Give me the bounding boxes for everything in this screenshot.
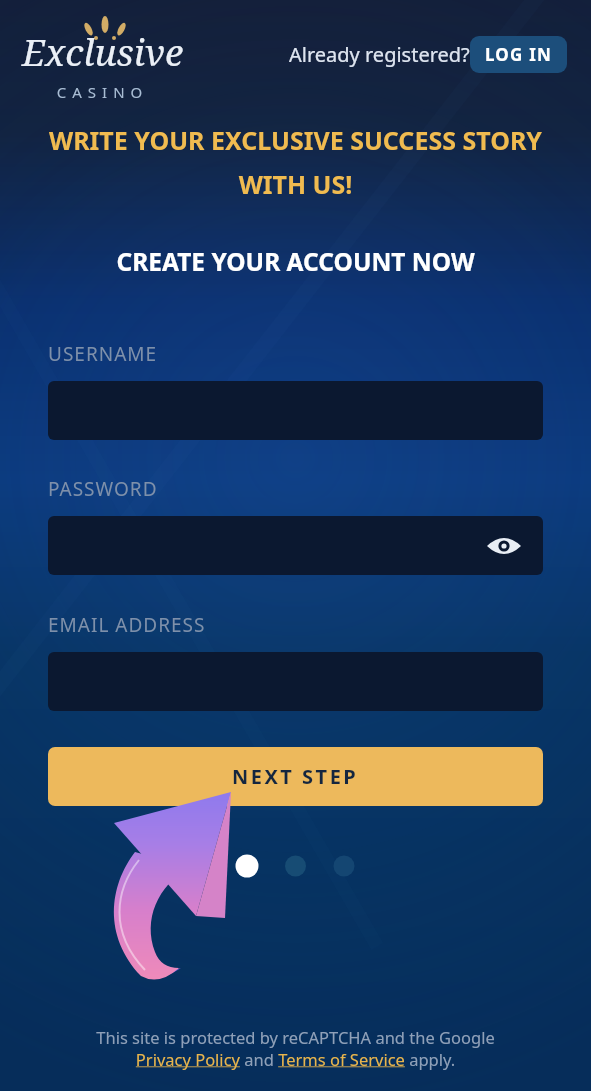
staticText: NEXT STEP bbox=[232, 763, 359, 790]
staticText: Exclusive bbox=[0, 26, 205, 76]
staticText: PASSWORD bbox=[48, 476, 158, 502]
staticText: This site is protected by reCAPTCHA and … bbox=[0, 1026, 591, 1048]
staticText: EMAIL ADDRESS bbox=[48, 612, 206, 638]
button[interactable]: LOG IN bbox=[470, 36, 567, 73]
button[interactable]: NEXT STEP bbox=[48, 747, 543, 806]
staticText: CREATE YOUR ACCOUNT NOW bbox=[0, 245, 591, 278]
staticText: CASINO bbox=[0, 82, 205, 102]
staticText: USERNAME bbox=[48, 341, 158, 367]
staticText: Already registered? bbox=[289, 41, 470, 68]
staticText: WRITE YOUR EXCLUSIVE SUCCESS STORY WITH … bbox=[0, 123, 591, 201]
button[interactable] bbox=[48, 516, 543, 575]
staticText: LOG IN bbox=[485, 43, 552, 66]
staticText: Privacy Policy and Terms of Service appl… bbox=[0, 1048, 591, 1070]
